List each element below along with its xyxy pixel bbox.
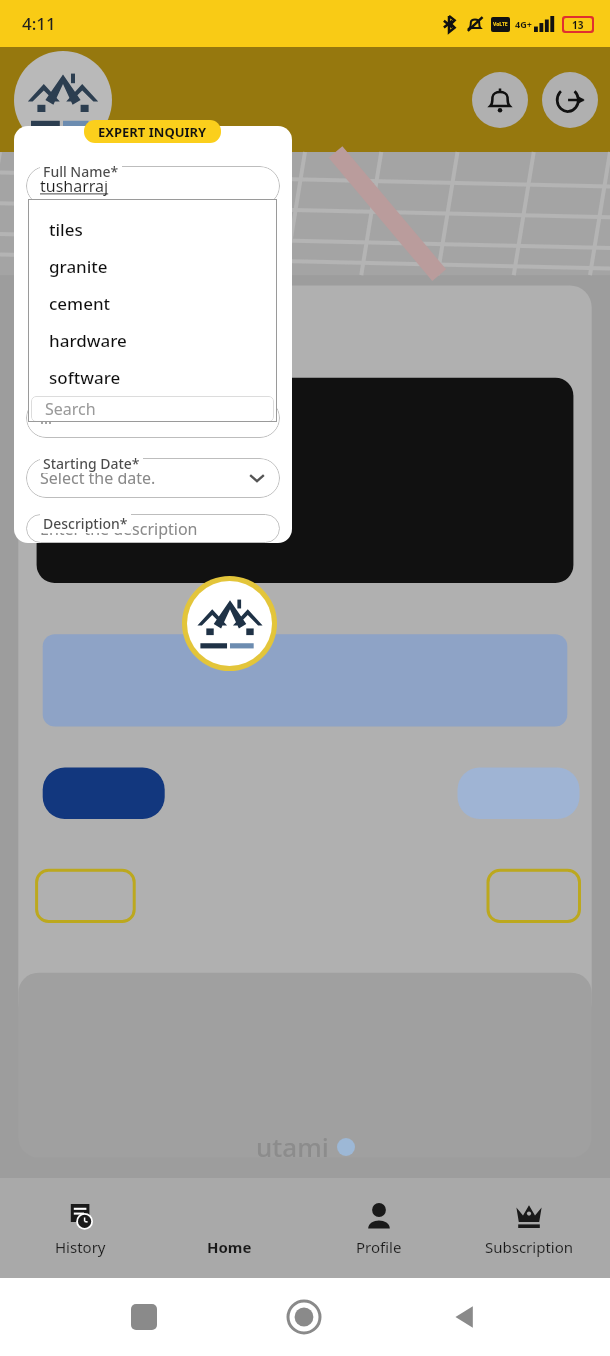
button[interactable]: hardware [28,322,277,359]
button[interactable]: EXPERT INQUIRY [84,120,221,143]
staticText: hardware [49,329,127,352]
staticText: ... [40,408,53,428]
staticText: 13 [572,18,584,31]
staticText: Full Name* [43,162,119,181]
button[interactable]: Logout [542,72,598,128]
staticText: EXPERT INQUIRY [98,123,207,141]
staticText: Select the date. [40,467,156,489]
staticText: Enter the description [40,518,198,540]
staticText: Profile [356,1237,402,1257]
button[interactable]: Notifications [472,72,528,128]
button[interactable]: cement [28,285,277,322]
button[interactable]: Subscription [454,1178,604,1278]
staticText: utami [256,1129,329,1164]
staticText: Subscription [485,1237,574,1257]
staticText: cement [49,292,111,315]
button[interactable]: software [28,359,277,396]
button[interactable]: ... [26,398,280,438]
button[interactable]: Back [451,1303,479,1331]
button[interactable]: Map [24,192,68,236]
staticText: granite [49,255,108,278]
staticText: Home [207,1237,252,1257]
button[interactable]: Enter the description [26,514,280,543]
staticText: History [55,1237,106,1257]
button[interactable]: tiles [28,211,277,248]
staticText: tiles [49,218,83,241]
button[interactable]: Home [155,1178,304,1278]
staticText: Search [45,398,96,420]
staticText: Description* [43,514,128,533]
staticText: 4G+ [515,18,532,30]
button[interactable]: Home [288,1301,320,1333]
button[interactable]: Recents [131,1304,157,1330]
staticText: 4:11 [22,12,56,35]
button[interactable] [187,581,272,666]
button[interactable]: Select the date. [26,458,280,498]
staticText: tusharraj [40,175,109,197]
button[interactable]: History [6,1178,155,1278]
button[interactable]: Profile [304,1178,454,1278]
button[interactable] [14,51,112,149]
button[interactable]: tusharraj [26,166,280,206]
staticText: software [49,366,121,389]
staticText: VoLTE [493,21,508,28]
staticText: Starting Date* [43,454,140,473]
button[interactable]: Search [31,396,274,422]
button[interactable]: granite [28,248,277,285]
